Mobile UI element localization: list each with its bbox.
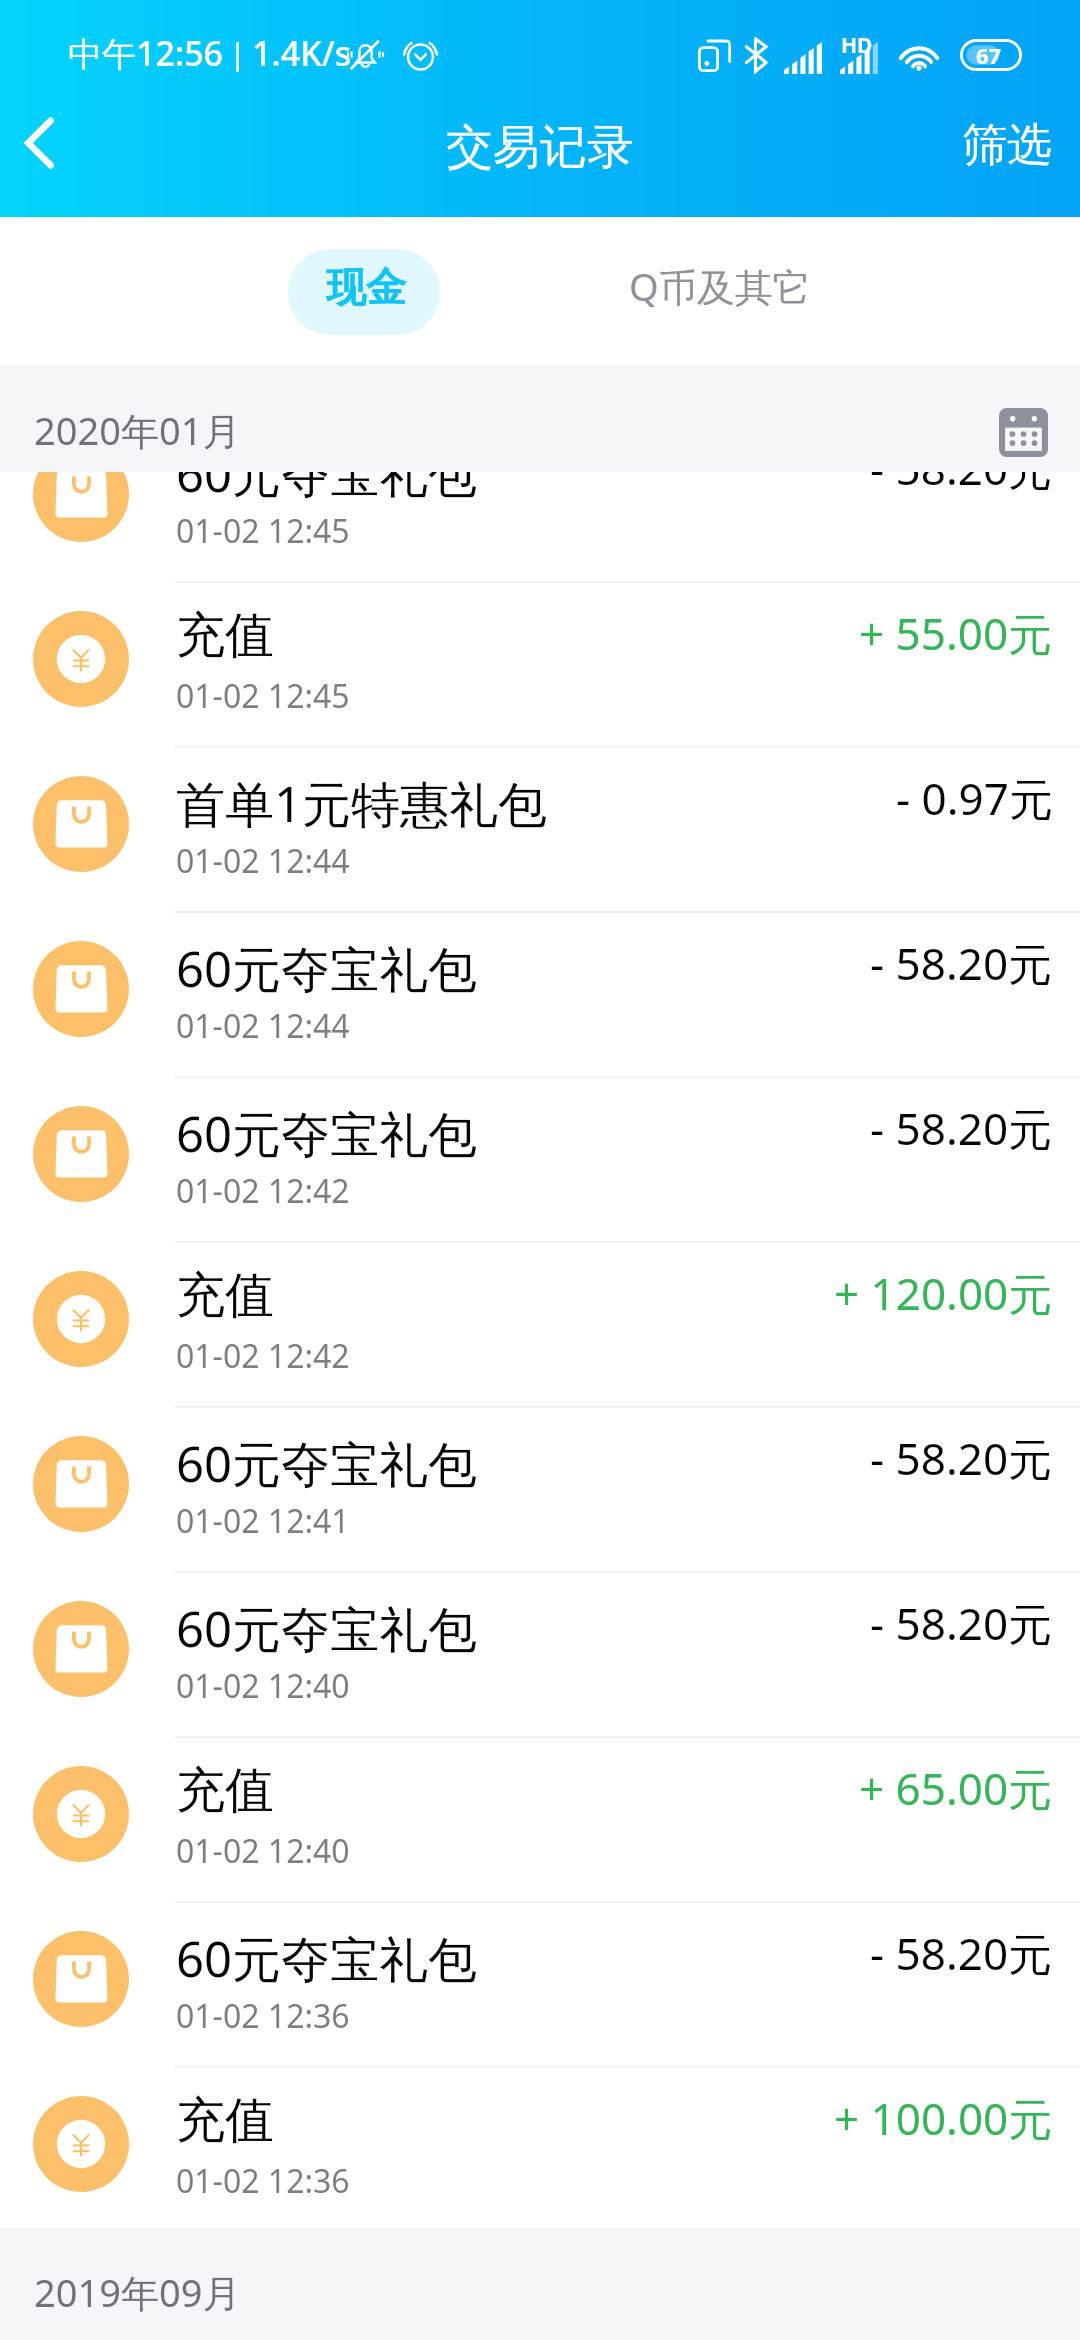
staticText: HD [841, 31, 873, 60]
staticText: 01-02 12:45 [176, 509, 350, 553]
staticText: Q币及其它 [629, 260, 811, 312]
staticText: 01-02 12:36 [176, 1994, 350, 2038]
button[interactable]: 筛选 [940, 107, 1080, 217]
staticText: 充值 [176, 605, 274, 667]
button[interactable]: 充值 [0, 1736, 1080, 1901]
staticText: 充值 [176, 1760, 274, 1822]
button[interactable]: 首单1元特惠礼包 [0, 746, 1080, 911]
staticText: | [221, 32, 255, 74]
staticText: 2020年01月 [34, 404, 241, 456]
button[interactable]: 60元夺宝礼包 [0, 1076, 1080, 1241]
staticText: 60元夺宝礼包 [176, 1430, 478, 1497]
staticText: 交易记录 [446, 118, 634, 177]
staticText: 01-02 12:42 [176, 1334, 350, 1378]
button[interactable]: 60元夺宝礼包 [0, 911, 1080, 1076]
staticText: 01-02 12:44 [176, 839, 350, 883]
staticText: 充值 [176, 1265, 274, 1327]
staticText: 60元夺宝礼包 [176, 1595, 478, 1662]
button[interactable]: 充值 [0, 1241, 1080, 1406]
staticText: 60元夺宝礼包 [176, 935, 478, 1002]
staticText: 2019年09月 [34, 2266, 241, 2318]
staticText: 60元夺宝礼包 [176, 1100, 478, 1167]
staticText: 01-02 12:40 [176, 1664, 350, 1708]
staticText: 60元夺宝礼包 [176, 1925, 478, 1992]
button[interactable]: 60元夺宝礼包 [0, 1571, 1080, 1736]
staticText: - 58.20元 [870, 1923, 1053, 1983]
staticText: - 58.20元 [870, 472, 1053, 498]
staticText: - 58.20元 [870, 933, 1053, 993]
staticText: 01-02 12:44 [176, 1004, 350, 1048]
staticText: 首单1元特惠礼包 [176, 770, 548, 837]
staticText: 现金 [326, 262, 406, 312]
button[interactable]: 充值 [0, 2066, 1080, 2231]
button[interactable]: Q币及其它 [600, 249, 832, 335]
staticText: + 65.00元 [859, 1758, 1053, 1818]
staticText: 01-02 12:45 [176, 674, 350, 718]
staticText: - 58.20元 [870, 1593, 1053, 1653]
button[interactable]: 充值 [0, 581, 1080, 746]
staticText: + 100.00元 [834, 2088, 1053, 2148]
staticText: 01-02 12:36 [176, 2159, 350, 2203]
button[interactable]: 60元夺宝礼包 [0, 1406, 1080, 1571]
staticText: + 120.00元 [834, 1263, 1053, 1323]
staticText: 筛选 [962, 117, 1052, 174]
button[interactable]: Back [0, 107, 108, 217]
staticText: 1.4K/s [252, 30, 352, 76]
staticText: 01-02 12:42 [176, 1169, 350, 1213]
button[interactable]: 60元夺宝礼包 [0, 1901, 1080, 2066]
staticText: - 0.97元 [896, 768, 1053, 828]
button[interactable]: Calendar [999, 408, 1048, 457]
staticText: 中午12:56 [68, 30, 224, 76]
button[interactable]: 现金 [288, 249, 440, 335]
staticText: 60元夺宝礼包 [176, 472, 478, 507]
staticText: 01-02 12:40 [176, 1829, 350, 1873]
staticText: 01-02 12:41 [176, 1499, 350, 1543]
staticText: 充值 [176, 2090, 274, 2152]
button[interactable]: 60元夺宝礼包 [0, 472, 1080, 581]
staticText: - 58.20元 [870, 1428, 1053, 1488]
staticText: 67 [976, 40, 1002, 70]
staticText: + 55.00元 [859, 603, 1053, 663]
staticText: - 58.20元 [870, 1098, 1053, 1158]
